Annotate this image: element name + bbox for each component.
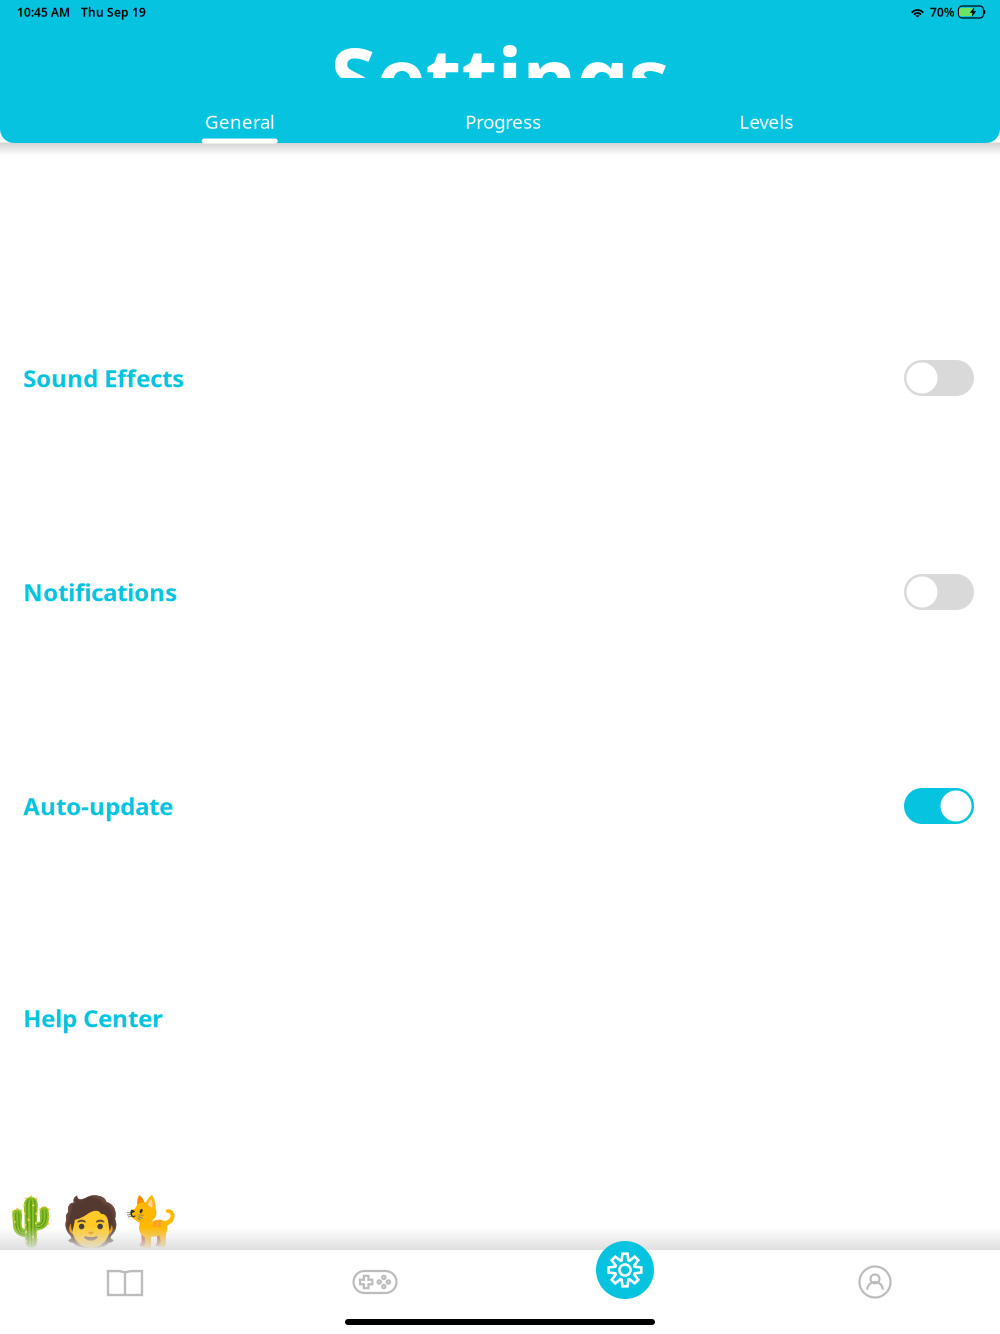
staticText: Help Center (23, 1002, 163, 1034)
button[interactable]: Profile (815, 1247, 935, 1317)
button[interactable]: Library (65, 1247, 185, 1317)
staticText: Levels (739, 109, 793, 134)
button[interactable]: Settings (596, 1241, 654, 1299)
staticText: 🌵🧑🐈 (0, 1194, 180, 1249)
button[interactable]: Auto-update (0, 751, 1000, 861)
button[interactable]: Progress (371, 108, 635, 146)
staticText: Progress (465, 109, 541, 134)
staticText: General (205, 109, 275, 134)
button[interactable]: Notifications (0, 537, 1000, 647)
staticText: Sound Effects (23, 362, 184, 394)
button[interactable]: General (108, 108, 371, 146)
button[interactable]: Games (315, 1247, 435, 1317)
button[interactable]: Help Center (0, 963, 1000, 1073)
button[interactable]: Levels (635, 108, 898, 146)
button[interactable]: Sound Effects (0, 323, 1000, 433)
staticText: Notifications (23, 576, 177, 608)
staticText: Settings (330, 21, 669, 131)
staticText: Auto-update (23, 790, 173, 822)
staticText: Thu Sep 19 (81, 4, 146, 20)
staticText: 10:45 AM (17, 4, 70, 20)
staticText: 70% (930, 4, 955, 20)
